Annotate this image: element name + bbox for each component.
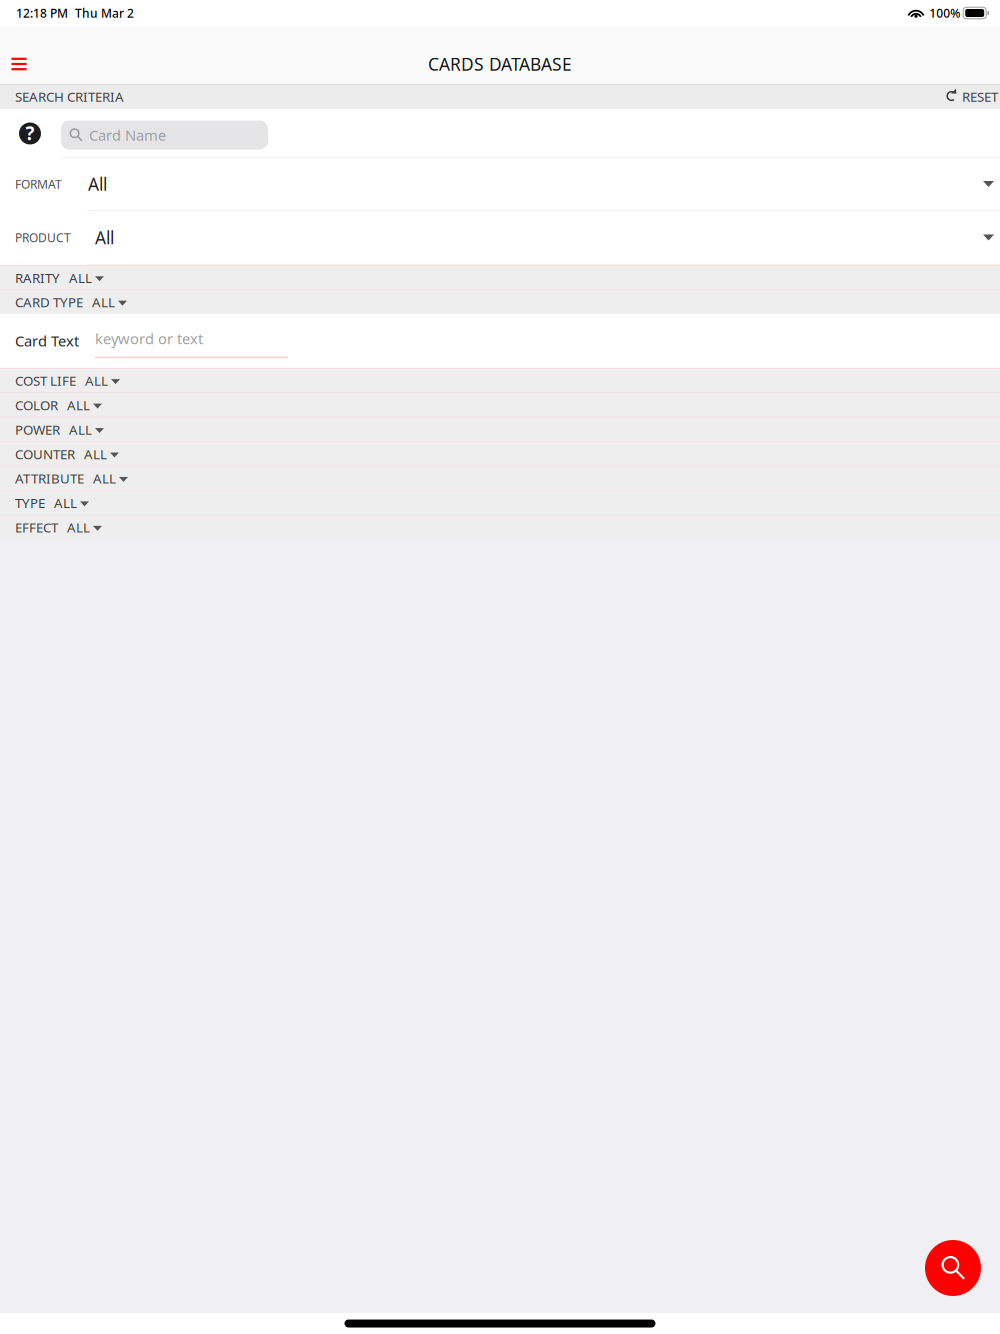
staticText: COUNTER (15, 445, 75, 463)
staticText: PRODUCT (15, 229, 71, 245)
staticText: Thu Mar 2 (75, 5, 134, 21)
staticText: Card Text (15, 331, 79, 351)
staticText: CARD TYPE (15, 293, 83, 311)
staticText: 100% (929, 5, 960, 21)
button[interactable]: PRODUCT (0, 211, 1000, 265)
button[interactable]: FORMAT (0, 158, 1000, 211)
staticText: ALL (93, 470, 116, 487)
button[interactable]: RESET (946, 88, 998, 105)
staticText: COLOR (15, 396, 58, 414)
button[interactable]: COUNTER (0, 442, 1000, 466)
button[interactable]: TYPE (0, 491, 1000, 514)
staticText: ALL (92, 293, 115, 311)
staticText: RESET (962, 88, 998, 105)
staticText: POWER (15, 421, 60, 438)
staticText: ALL (69, 421, 92, 438)
button[interactable]: Card Name (61, 120, 268, 149)
button[interactable]: CARD TYPE (0, 290, 1000, 314)
staticText: ATTRIBUTE (15, 470, 84, 487)
staticText: 12:18 PM (16, 5, 68, 21)
staticText: SEARCH CRITERIA (15, 88, 124, 105)
staticText: FORMAT (15, 176, 62, 192)
staticText: keyword or text (95, 329, 203, 348)
staticText: ALL (85, 372, 108, 389)
staticText: CARDS DATABASE (428, 52, 572, 75)
staticText: ALL (54, 494, 77, 512)
button[interactable]: EFFECT (0, 516, 1000, 539)
staticText: All (95, 226, 114, 249)
staticText: Card Name (89, 125, 166, 145)
staticText: ALL (84, 445, 107, 463)
staticText: ? (25, 121, 34, 145)
staticText: EFFECT (15, 518, 58, 536)
button[interactable]: COLOR (0, 393, 1000, 417)
button[interactable]: ATTRIBUTE (0, 467, 1000, 490)
button[interactable]: COST LIFE (0, 369, 1000, 392)
button[interactable]: Help (19, 122, 41, 144)
staticText: COST LIFE (15, 372, 76, 389)
staticText: TYPE (15, 494, 45, 512)
staticText: All (88, 172, 107, 195)
staticText: ALL (67, 396, 90, 414)
button[interactable]: POWER (0, 418, 1000, 441)
staticText: ALL (69, 269, 92, 287)
button[interactable]: Search (925, 1240, 981, 1296)
button[interactable]: Menu (4, 49, 34, 79)
button[interactable]: RARITY (0, 266, 1000, 289)
staticText: RARITY (15, 269, 60, 287)
staticText: ALL (67, 518, 90, 536)
